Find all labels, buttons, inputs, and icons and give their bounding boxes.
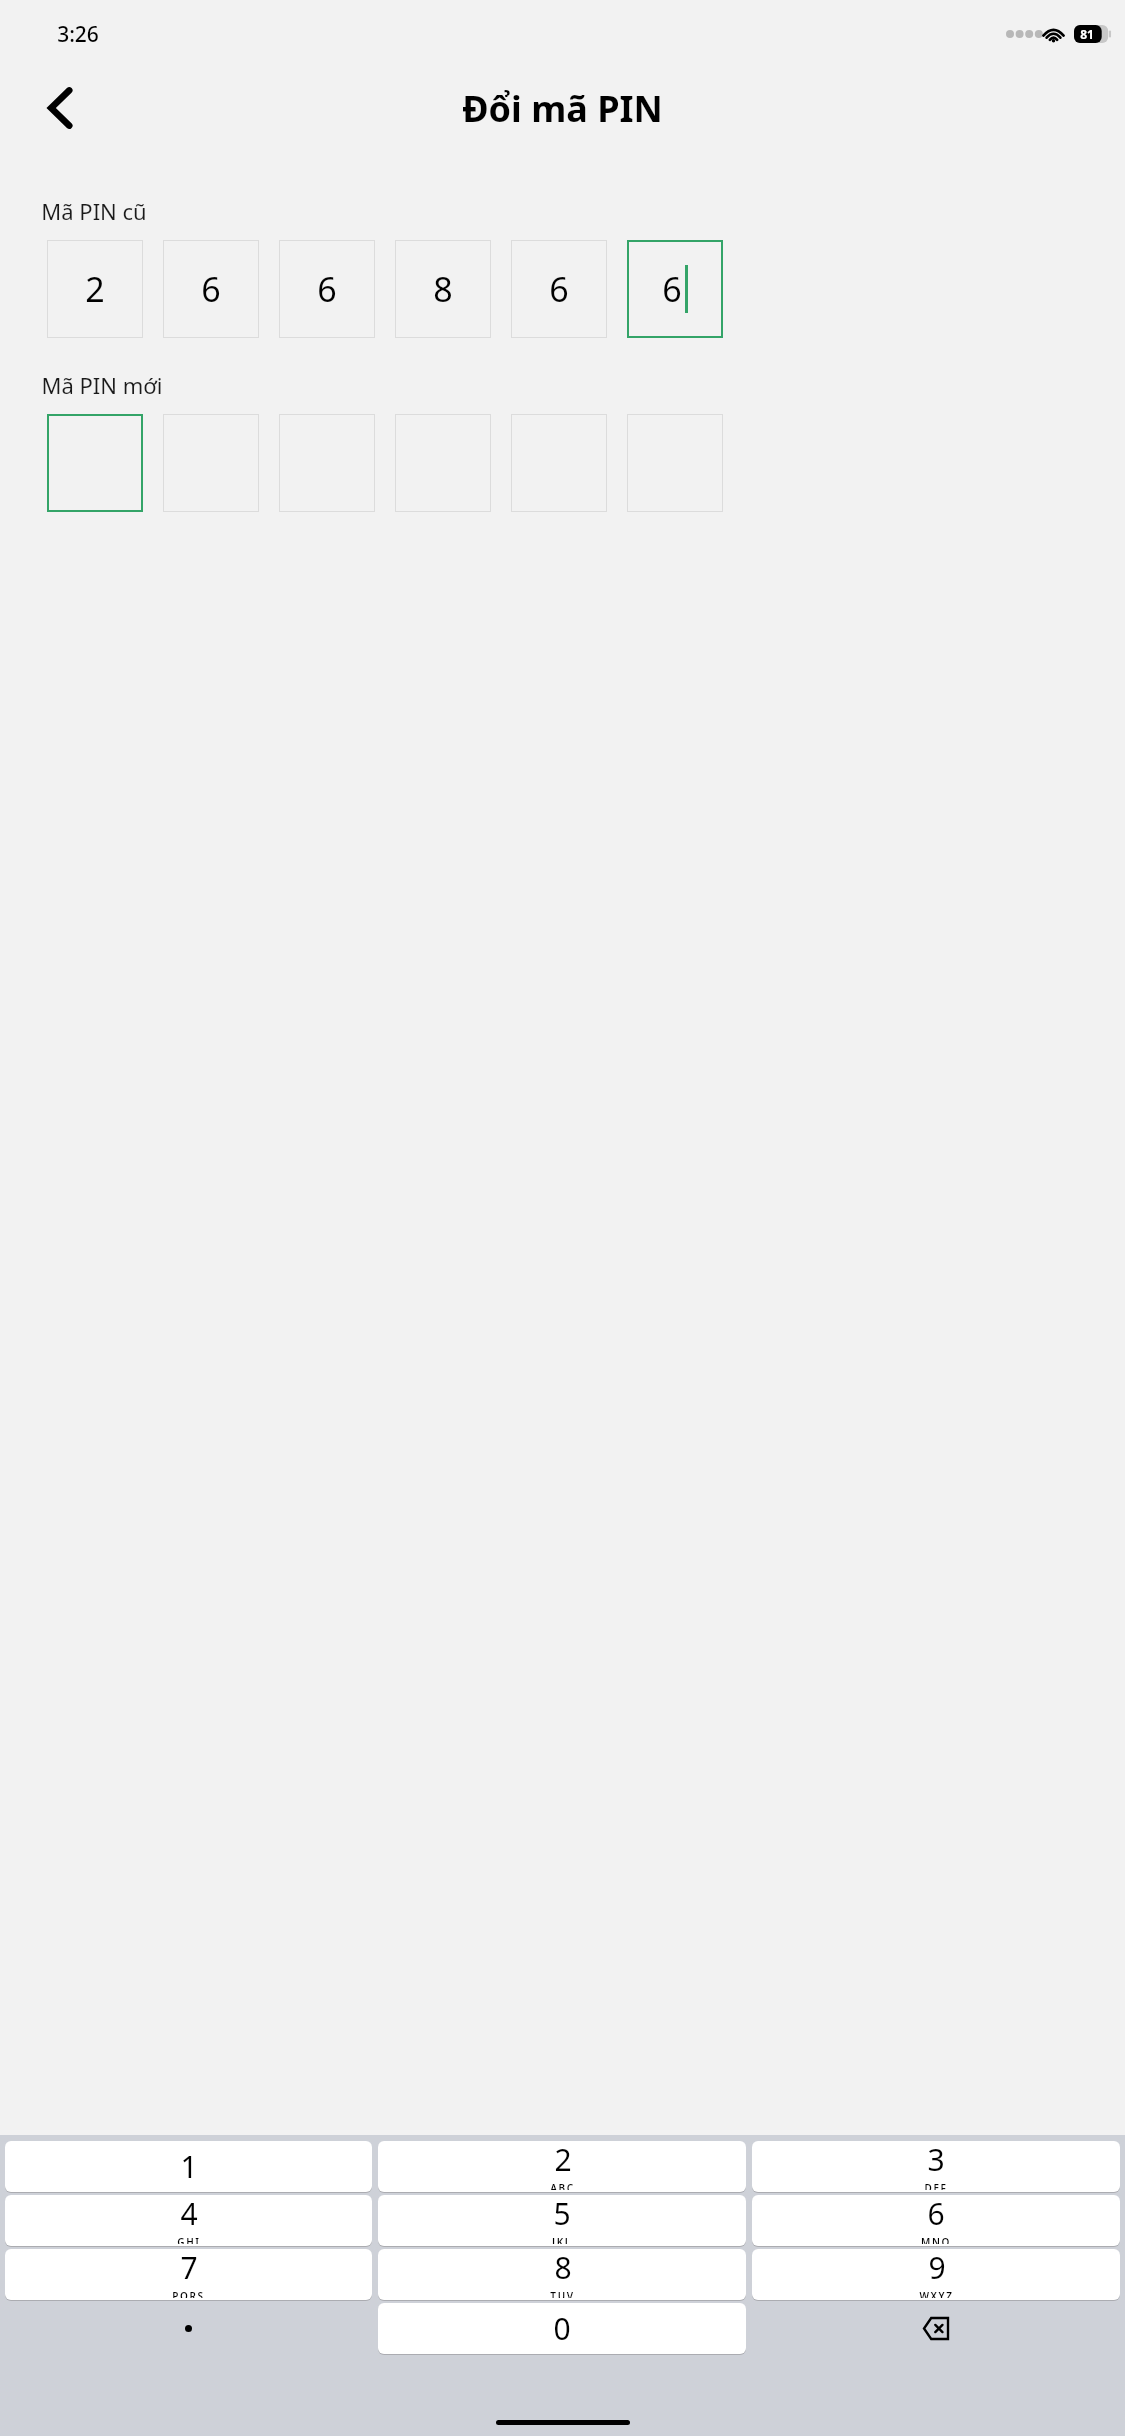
button[interactable]: 6 — [279, 240, 375, 338]
button[interactable] — [627, 414, 723, 512]
button[interactable] — [163, 414, 259, 512]
staticText: 9 — [928, 2249, 946, 2288]
staticText: DEF — [924, 2181, 948, 2190]
button[interactable]: 3 — [752, 2141, 1120, 2192]
staticText: TUV — [550, 2289, 575, 2298]
staticText: 3:26 — [57, 20, 99, 49]
button[interactable]: 6 — [627, 240, 723, 338]
button[interactable] — [395, 414, 491, 512]
staticText: Mã PIN mới — [41, 370, 163, 400]
button[interactable]: Period — [5, 2303, 372, 2354]
button[interactable]: 5 — [378, 2195, 746, 2246]
button[interactable]: Back — [26, 74, 94, 142]
staticText: 2 — [554, 2141, 572, 2180]
staticText: 6 — [927, 2195, 945, 2234]
button[interactable]: Backspace — [752, 2303, 1120, 2354]
button[interactable]: 1 — [5, 2141, 372, 2192]
button[interactable]: 6 — [511, 240, 607, 338]
staticText: MNO — [921, 2235, 951, 2244]
staticText: 1 — [180, 2146, 198, 2187]
staticText: 8 — [433, 266, 453, 312]
staticText: 2 — [85, 266, 105, 312]
staticText: 6 — [549, 266, 569, 312]
button[interactable]: 7 — [5, 2249, 372, 2300]
staticText: 6 — [662, 266, 682, 312]
staticText: 3 — [927, 2141, 945, 2180]
staticText: 8 — [554, 2249, 572, 2288]
button[interactable] — [47, 414, 143, 512]
staticText: Đổi mã PIN — [462, 84, 663, 133]
staticText: 5 — [553, 2195, 571, 2234]
button[interactable]: 6 — [752, 2195, 1120, 2246]
staticText: 0 — [553, 2308, 571, 2349]
staticText: PQRS — [172, 2289, 205, 2298]
staticText: 4 — [180, 2195, 198, 2234]
button[interactable]: 8 — [395, 240, 491, 338]
button[interactable]: 2 — [47, 240, 143, 338]
staticText: 7 — [180, 2249, 198, 2288]
button[interactable]: 0 — [378, 2303, 746, 2354]
staticText: 81 — [1080, 26, 1094, 42]
button[interactable]: 8 — [378, 2249, 746, 2300]
staticText: GHI — [177, 2235, 201, 2244]
staticText: JKL — [552, 2235, 572, 2244]
button[interactable] — [511, 414, 607, 512]
staticText: 6 — [317, 266, 337, 312]
button[interactable]: 9 — [752, 2249, 1120, 2300]
button[interactable]: 6 — [163, 240, 259, 338]
button[interactable] — [279, 414, 375, 512]
staticText: WXYZ — [919, 2289, 954, 2298]
button[interactable]: 4 — [5, 2195, 372, 2246]
staticText: Mã PIN cũ — [41, 196, 147, 226]
staticText: 6 — [201, 266, 221, 312]
button[interactable]: 2 — [378, 2141, 746, 2192]
staticText: ABC — [550, 2181, 575, 2190]
